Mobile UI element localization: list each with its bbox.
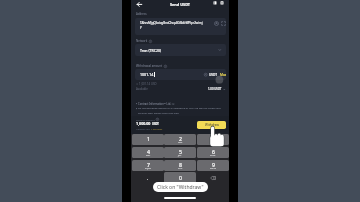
staticText: ABC — [178, 141, 183, 144]
staticText: Available — [136, 87, 148, 91]
staticText: 5 — [179, 148, 182, 155]
staticText: 1 — [147, 135, 150, 142]
button[interactable]: Back — [134, 0, 143, 9]
button[interactable]: 2 — [164, 134, 196, 145]
staticText: WXYZ — [210, 167, 217, 170]
staticText: Address — [136, 12, 147, 16]
staticText: Withdraw — [205, 123, 219, 127]
staticText: 1.00 USDT — [208, 87, 222, 91]
staticText: Contract Information™ Ltd. ⓘ — [138, 102, 175, 106]
button[interactable]: 1 — [132, 134, 164, 145]
button[interactable]: Order history — [213, 1, 217, 5]
button[interactable]: 9 — [197, 160, 229, 171]
staticText: 6 — [212, 148, 215, 155]
staticText: 0 — [179, 174, 182, 181]
staticText: 7 — [147, 161, 150, 168]
staticText: Network — [136, 39, 148, 43]
staticText: 2 — [179, 135, 182, 142]
staticText: 1.00 USDT — [151, 127, 163, 130]
button[interactable]: 6 — [197, 147, 229, 158]
button[interactable]: Clear — [204, 73, 207, 76]
button[interactable]: Decimal point — [132, 172, 164, 183]
staticText: ≈ 1,001.14 USD — [136, 82, 157, 86]
staticText: . — [147, 174, 149, 181]
button[interactable]: 1001.14 — [135, 69, 226, 80]
staticText: 9 — [212, 161, 215, 168]
staticText: GHI — [146, 154, 151, 157]
button[interactable]: TAhcvMjgQbcizgBnxChxp4G6bfzWPipr2wimjY — [135, 18, 226, 35]
staticText: PQRS — [145, 167, 152, 170]
button[interactable]: 3 — [197, 134, 229, 145]
staticText: Receive amount — [136, 118, 155, 121]
staticText: Send USDT — [170, 2, 191, 7]
staticText: MNO — [210, 154, 216, 157]
staticText: TAhcvMjgQbcizgBnxChxp4G6bfzWPipr2wimjY — [140, 21, 204, 30]
button[interactable]: Address book — [214, 21, 219, 26]
staticText: 4 — [147, 148, 150, 155]
button[interactable]: Withdraw — [197, 121, 226, 129]
staticText: 3 — [212, 135, 215, 142]
button[interactable]: Support — [220, 1, 224, 5]
staticText: Network fee — [136, 127, 151, 130]
staticText: USDT — [152, 122, 159, 126]
staticText: Tron (TRC20) — [140, 48, 162, 53]
staticText: JKL — [178, 154, 182, 157]
staticText: Do not withdraw directly to a crowdfund … — [138, 106, 230, 114]
button[interactable]: Max — [220, 73, 226, 77]
staticText: Click on "Withdraw" — [157, 184, 204, 191]
button[interactable]: Tron (TRC20) — [135, 44, 226, 56]
button[interactable]: Delete — [197, 172, 229, 183]
button[interactable]: 5 — [164, 147, 196, 158]
staticText: TUV — [178, 167, 183, 170]
staticText: Withdrawal amount — [136, 64, 163, 68]
staticText: 1001.14 — [140, 72, 154, 77]
button[interactable]: Scan QR code — [221, 21, 226, 26]
button[interactable]: 0 — [164, 172, 196, 183]
button[interactable]: 7 — [132, 160, 164, 171]
staticText: 1,000.00 — [136, 121, 151, 126]
staticText: 8 — [179, 161, 182, 168]
button[interactable]: 4 — [132, 147, 164, 158]
button[interactable]: 8 — [164, 160, 196, 171]
staticText: USDT — [209, 73, 218, 77]
